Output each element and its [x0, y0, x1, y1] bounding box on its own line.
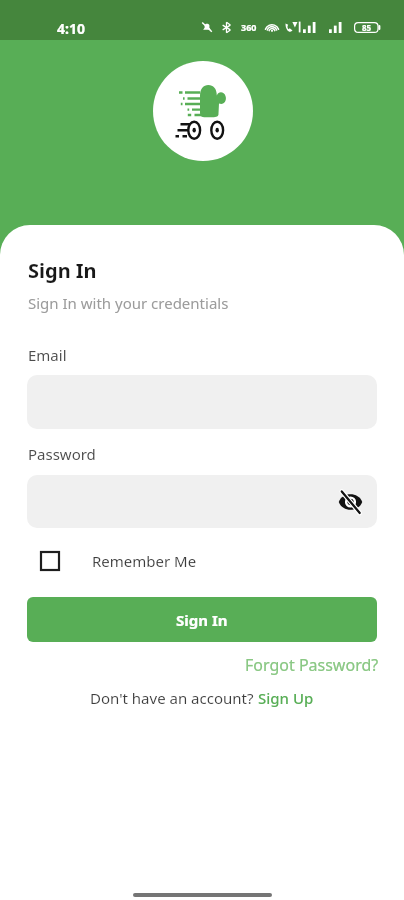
staticText: 4:10	[57, 19, 85, 38]
button[interactable]: Sign In	[27, 597, 377, 642]
button[interactable]: Sign Up	[258, 688, 314, 708]
button[interactable]: Remember Me	[28, 547, 197, 575]
staticText: 360	[241, 21, 257, 33]
staticText: Password	[28, 444, 96, 464]
button[interactable]: Show password	[27, 475, 377, 528]
staticText: Sign In with your credentials	[28, 293, 229, 313]
staticText: Forgot Password?	[245, 654, 379, 676]
staticText: Sign Up	[258, 688, 314, 708]
button[interactable]: Forgot Password?	[245, 654, 379, 676]
staticText: Don't have an account?	[90, 688, 258, 708]
staticText: 85	[362, 22, 372, 33]
staticText: Email	[28, 345, 67, 365]
staticText: Sign In	[28, 257, 97, 284]
staticText: Sign In	[176, 610, 228, 630]
button[interactable]: Show password	[334, 486, 366, 518]
staticText: Remember Me	[92, 551, 197, 571]
